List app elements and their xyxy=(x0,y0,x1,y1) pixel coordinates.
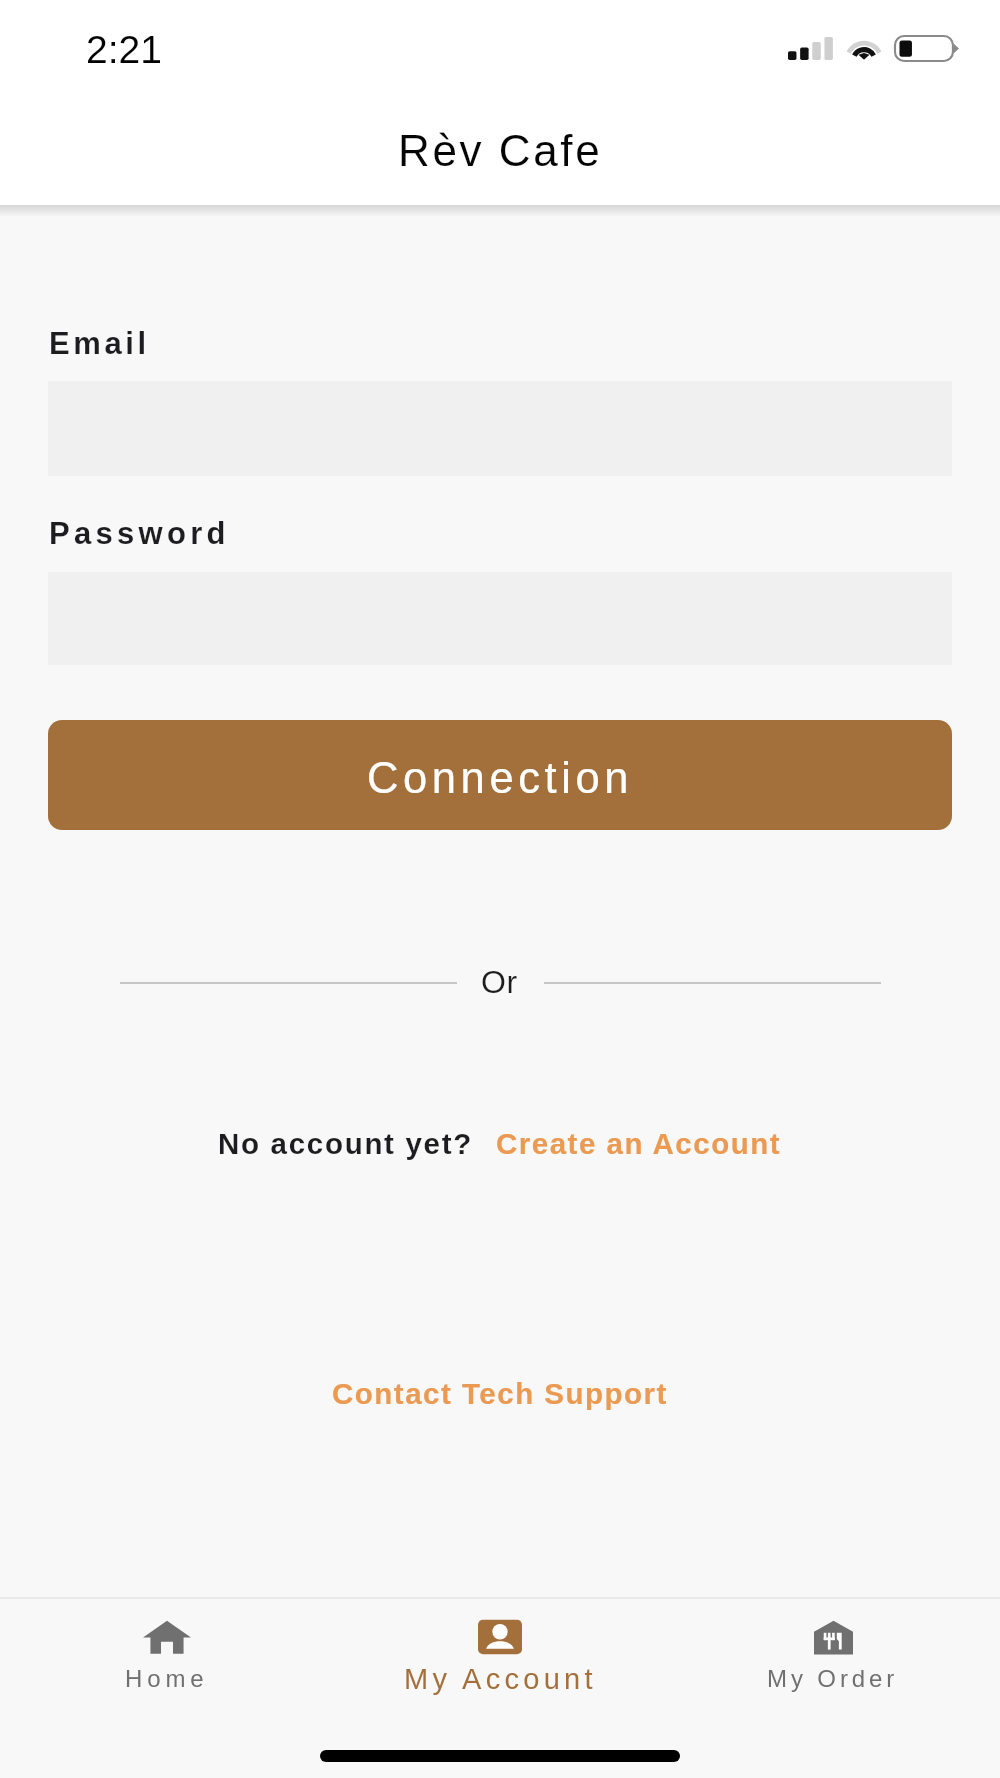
staticText: Home xyxy=(125,1665,209,1692)
staticText: Password xyxy=(49,516,230,551)
staticText: No account yet? xyxy=(218,1127,473,1160)
staticText: Email xyxy=(49,326,150,361)
other: Home xyxy=(143,1620,191,1655)
button[interactable]: Create an Account xyxy=(496,1127,782,1160)
button[interactable]: Contact Tech Support xyxy=(332,1377,668,1410)
staticText: 2:21 xyxy=(86,28,162,72)
staticText: Rèv Cafe xyxy=(398,126,603,175)
staticText: Connection xyxy=(367,754,634,803)
staticText: Or xyxy=(481,964,518,1000)
staticText: Contact Tech Support xyxy=(332,1377,668,1410)
button[interactable]: My Order xyxy=(691,1620,975,1692)
staticText: My Order xyxy=(767,1665,899,1692)
other: My Account xyxy=(478,1619,522,1655)
other: My Order xyxy=(814,1620,853,1655)
staticText: My Account xyxy=(404,1663,597,1695)
button[interactable]: Connection xyxy=(48,720,952,830)
button[interactable]: Home xyxy=(25,1620,309,1692)
staticText: Create an Account xyxy=(496,1127,782,1160)
button[interactable]: My Account xyxy=(360,1619,640,1695)
